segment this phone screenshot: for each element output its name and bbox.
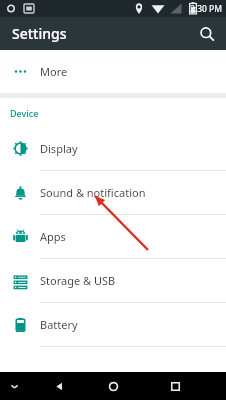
button[interactable]: Back bbox=[48, 375, 70, 397]
staticText: Device bbox=[10, 107, 39, 119]
staticText: Display bbox=[40, 141, 78, 156]
staticText: Settings bbox=[12, 24, 67, 43]
button[interactable]: Sound & notification bbox=[0, 171, 226, 214]
staticText: Storage & USB bbox=[40, 273, 116, 288]
staticText: Sound & notification bbox=[40, 185, 146, 200]
button[interactable]: Recent apps bbox=[164, 375, 186, 397]
staticText: Battery bbox=[40, 317, 78, 332]
button[interactable]: More bbox=[0, 50, 226, 93]
button[interactable]: Home bbox=[102, 375, 124, 397]
button[interactable]: Hide keyboard bbox=[4, 376, 24, 396]
button[interactable]: Storage & USB bbox=[0, 259, 226, 302]
button[interactable]: Apps bbox=[0, 215, 226, 258]
button[interactable]: Display bbox=[0, 127, 226, 170]
button[interactable]: Search bbox=[194, 21, 220, 47]
staticText: 2:30 PM bbox=[190, 3, 223, 15]
staticText: Apps bbox=[40, 229, 66, 244]
button[interactable]: Battery bbox=[0, 303, 226, 346]
staticText: More bbox=[40, 64, 68, 79]
